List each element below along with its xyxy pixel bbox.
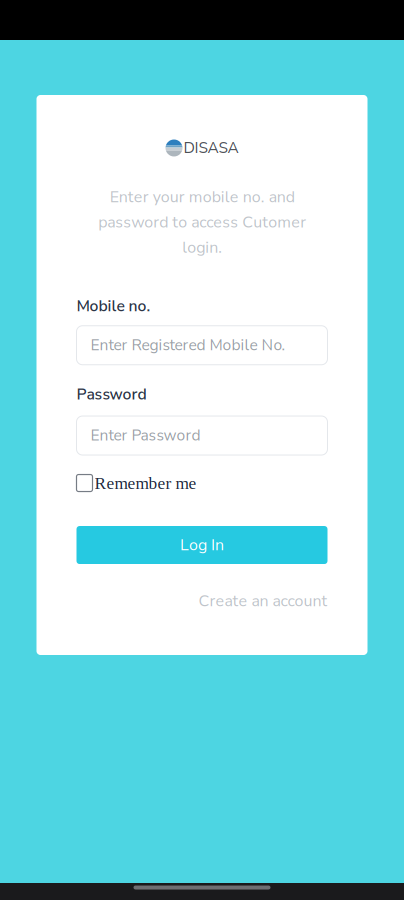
staticText: Create an account xyxy=(198,590,327,612)
button[interactable]: Create an account xyxy=(76,591,327,611)
staticText: Password xyxy=(76,384,146,405)
staticText: Log In xyxy=(180,534,224,556)
staticText: Enter Password xyxy=(90,425,200,446)
staticText: Mobile no. xyxy=(76,295,150,317)
staticText: Remember me xyxy=(94,473,196,493)
staticText: DISASA xyxy=(183,137,238,158)
button[interactable]: DISASA xyxy=(165,139,238,157)
staticText: Enter Registered Mobile No. xyxy=(90,335,285,356)
button[interactable]: Log In xyxy=(76,526,327,564)
button[interactable]: Remember me xyxy=(76,472,327,494)
staticText: Enter your mobile no. and password to ac… xyxy=(98,186,306,258)
